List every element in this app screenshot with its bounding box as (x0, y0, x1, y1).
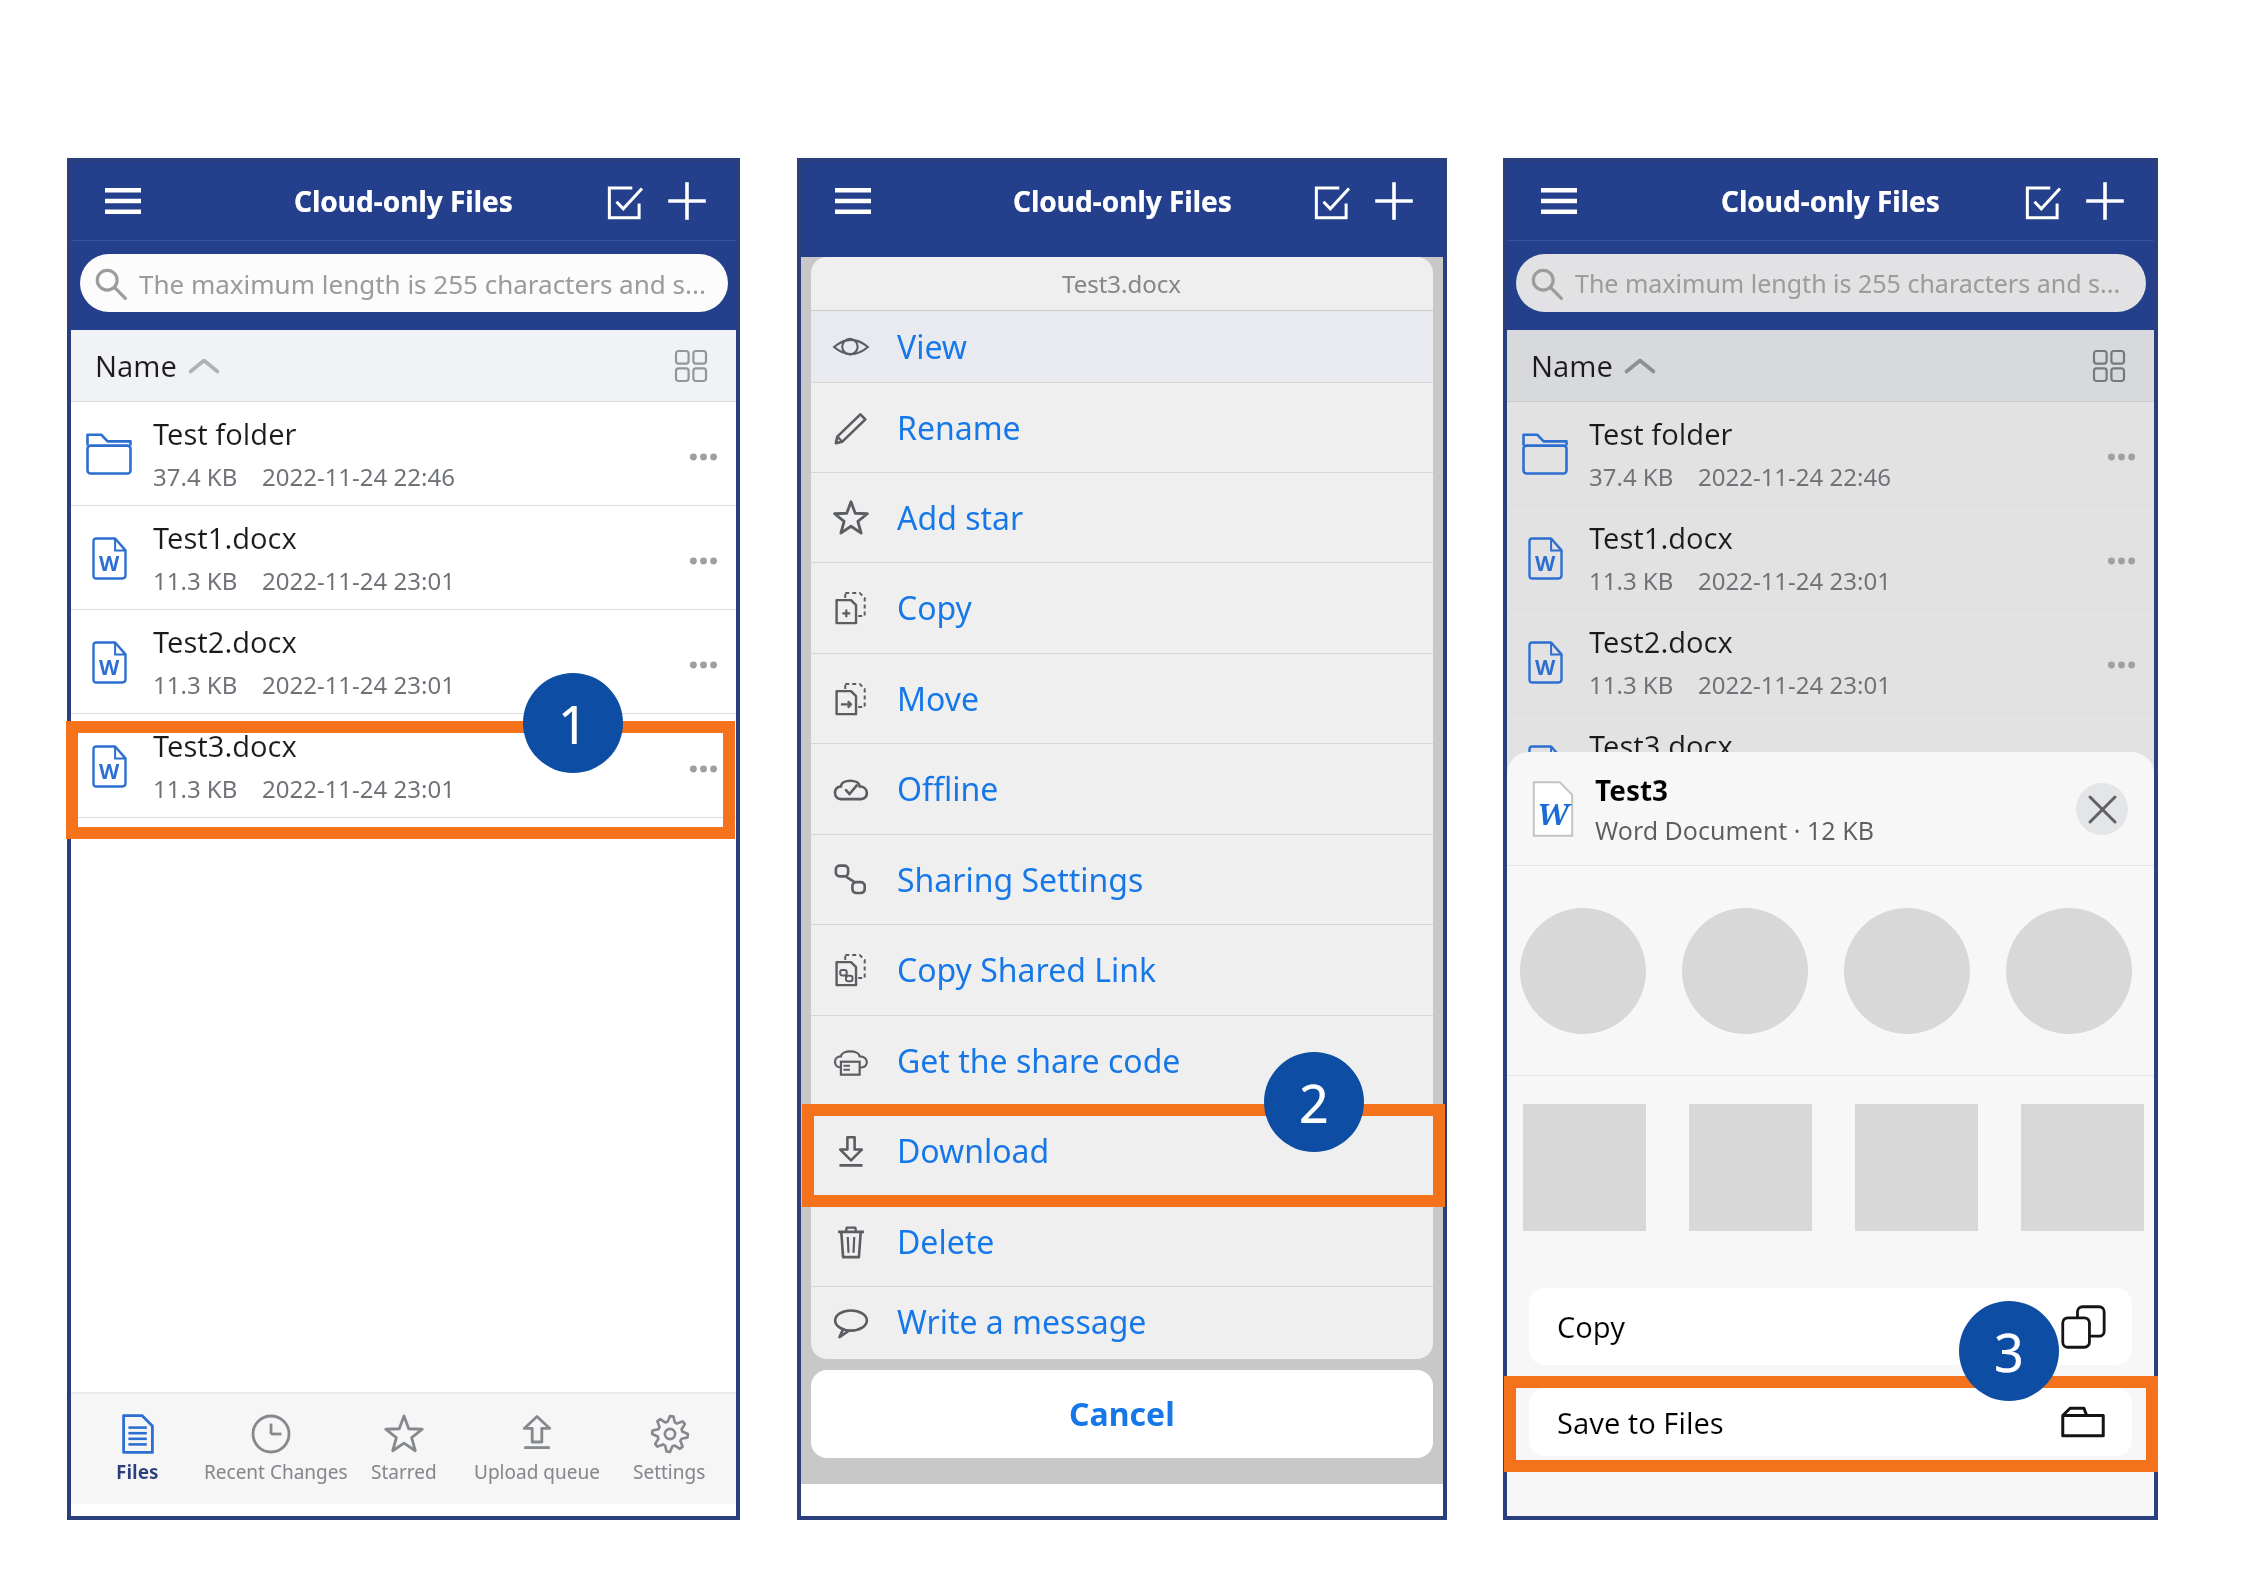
staticText: Starred (371, 1459, 437, 1485)
button[interactable]: W (71, 610, 736, 713)
staticText: Test1.docx (153, 518, 297, 557)
staticText: Test1.docx (1589, 518, 1733, 557)
button[interactable]: Share with contact (1520, 908, 1646, 1034)
button[interactable]: The maximum length is 255 characters and… (1516, 254, 2146, 312)
button[interactable]: Delete (811, 1197, 1433, 1286)
staticText: Test2.docx (1589, 622, 1733, 661)
button[interactable]: Menu (828, 176, 878, 226)
staticText: Name (1531, 346, 1613, 385)
button[interactable]: W (1507, 506, 2154, 609)
staticText: 11.3 KB (153, 668, 238, 701)
button[interactable]: Add star (811, 473, 1433, 562)
staticText: W (1535, 757, 1556, 786)
staticText: Test3.docx (1589, 726, 1733, 765)
staticText: 11.3 KB (153, 772, 238, 805)
button[interactable]: Files (71, 1394, 204, 1504)
button[interactable]: Name (1507, 330, 1671, 401)
button[interactable]: Write a message (811, 1287, 1433, 1357)
staticText: Rename (897, 406, 1021, 450)
button[interactable]: Copy (1529, 1288, 2132, 1365)
button[interactable]: More options for Test1.docx (2088, 506, 2154, 609)
button[interactable]: W (71, 506, 736, 609)
staticText: Word Document · 12 KB (1595, 813, 1874, 847)
staticText: W (99, 549, 120, 578)
staticText: 2022-11-24 23:01 (262, 564, 455, 597)
button[interactable]: Cancel (811, 1370, 1433, 1458)
button[interactable]: More options for Test1.docx (670, 506, 736, 609)
staticText: 37.4 KB (1589, 460, 1674, 493)
button[interactable]: Add (2081, 177, 2129, 225)
button[interactable]: Copy Shared Link (811, 925, 1433, 1015)
button[interactable]: Share with contact (2006, 908, 2132, 1034)
button[interactable]: Add (1370, 177, 1418, 225)
staticText: Test3 (1595, 771, 1669, 809)
staticText: 11.3 KB (1589, 564, 1674, 597)
button[interactable]: W (1507, 610, 2154, 713)
staticText: W (1537, 793, 1569, 834)
button[interactable]: Offline (811, 744, 1433, 834)
button[interactable]: Copy (811, 563, 1433, 653)
staticText: Delete (897, 1220, 995, 1264)
staticText: Offline (897, 767, 999, 811)
button[interactable]: More options for Test3.docx (670, 714, 736, 817)
button[interactable]: The maximum length is 255 characters and… (80, 254, 728, 312)
staticText: Add star (897, 496, 1024, 540)
staticText: Copy (897, 586, 972, 630)
staticText: W (99, 653, 120, 682)
button[interactable]: Switch to grid view (670, 345, 712, 387)
button[interactable]: Starred (337, 1394, 470, 1504)
button[interactable]: Move (811, 654, 1433, 743)
button[interactable]: Share with contact (1844, 908, 1970, 1034)
button[interactable]: Add (663, 177, 711, 225)
button[interactable]: Menu (1534, 176, 1584, 226)
button[interactable]: Settings (603, 1394, 736, 1504)
button[interactable]: More options for Test2.docx (670, 610, 736, 713)
staticText: Cloud-only Files (1721, 182, 1940, 220)
button[interactable]: Select items (2019, 177, 2067, 225)
button[interactable]: Sharing Settings (811, 835, 1433, 924)
staticText: Save to Files (1557, 1403, 1724, 1442)
staticText: Cloud-only Files (294, 182, 513, 220)
button[interactable]: Select items (601, 177, 649, 225)
button[interactable]: Rename (811, 383, 1433, 472)
button[interactable]: Save to Files (1529, 1388, 2132, 1456)
staticText: Settings (633, 1459, 706, 1485)
button[interactable]: Test folder (71, 402, 736, 505)
button[interactable]: W (71, 714, 736, 817)
button[interactable]: W (1507, 714, 2154, 817)
staticText: Name (95, 346, 177, 385)
button[interactable]: Share with contact (1682, 908, 1808, 1034)
staticText: 11.3 KB (1589, 773, 1674, 806)
button[interactable]: Switch to grid view (2088, 345, 2130, 387)
staticText: Sharing Settings (897, 858, 1144, 902)
button[interactable]: Menu (98, 176, 148, 226)
staticText: 3 (1994, 1316, 2024, 1387)
button[interactable]: View (811, 311, 1433, 382)
staticText: 11.3 KB (1589, 668, 1674, 701)
staticText: W (99, 757, 120, 786)
staticText: W (1535, 653, 1556, 682)
button[interactable]: Close (2076, 783, 2128, 835)
button[interactable]: More options for Test folder (670, 402, 736, 505)
button[interactable]: Name (71, 330, 235, 401)
button[interactable]: Select items (1308, 177, 1356, 225)
button[interactable]: Upload queue (470, 1394, 603, 1504)
button[interactable]: Test folder (1507, 402, 2154, 505)
staticText: The maximum length is 255 characters and… (139, 266, 706, 301)
staticText: 2022-11-24 23:01 (262, 668, 455, 701)
button[interactable]: Get the share code (811, 1016, 1433, 1105)
staticText: 2022-11-24 22:46 (262, 460, 455, 493)
button[interactable]: Download (811, 1106, 1433, 1196)
button[interactable]: Recent Changes (204, 1394, 337, 1504)
staticText: 2022-11-24 23:01 (1698, 564, 1891, 597)
button[interactable]: More options for Test2.docx (2088, 610, 2154, 713)
staticText: Download (897, 1129, 1050, 1173)
staticText: The maximum length is 255 characters and… (1575, 266, 2121, 300)
staticText: Get the share code (897, 1039, 1181, 1083)
button[interactable]: More options for Test folder (2088, 402, 2154, 505)
